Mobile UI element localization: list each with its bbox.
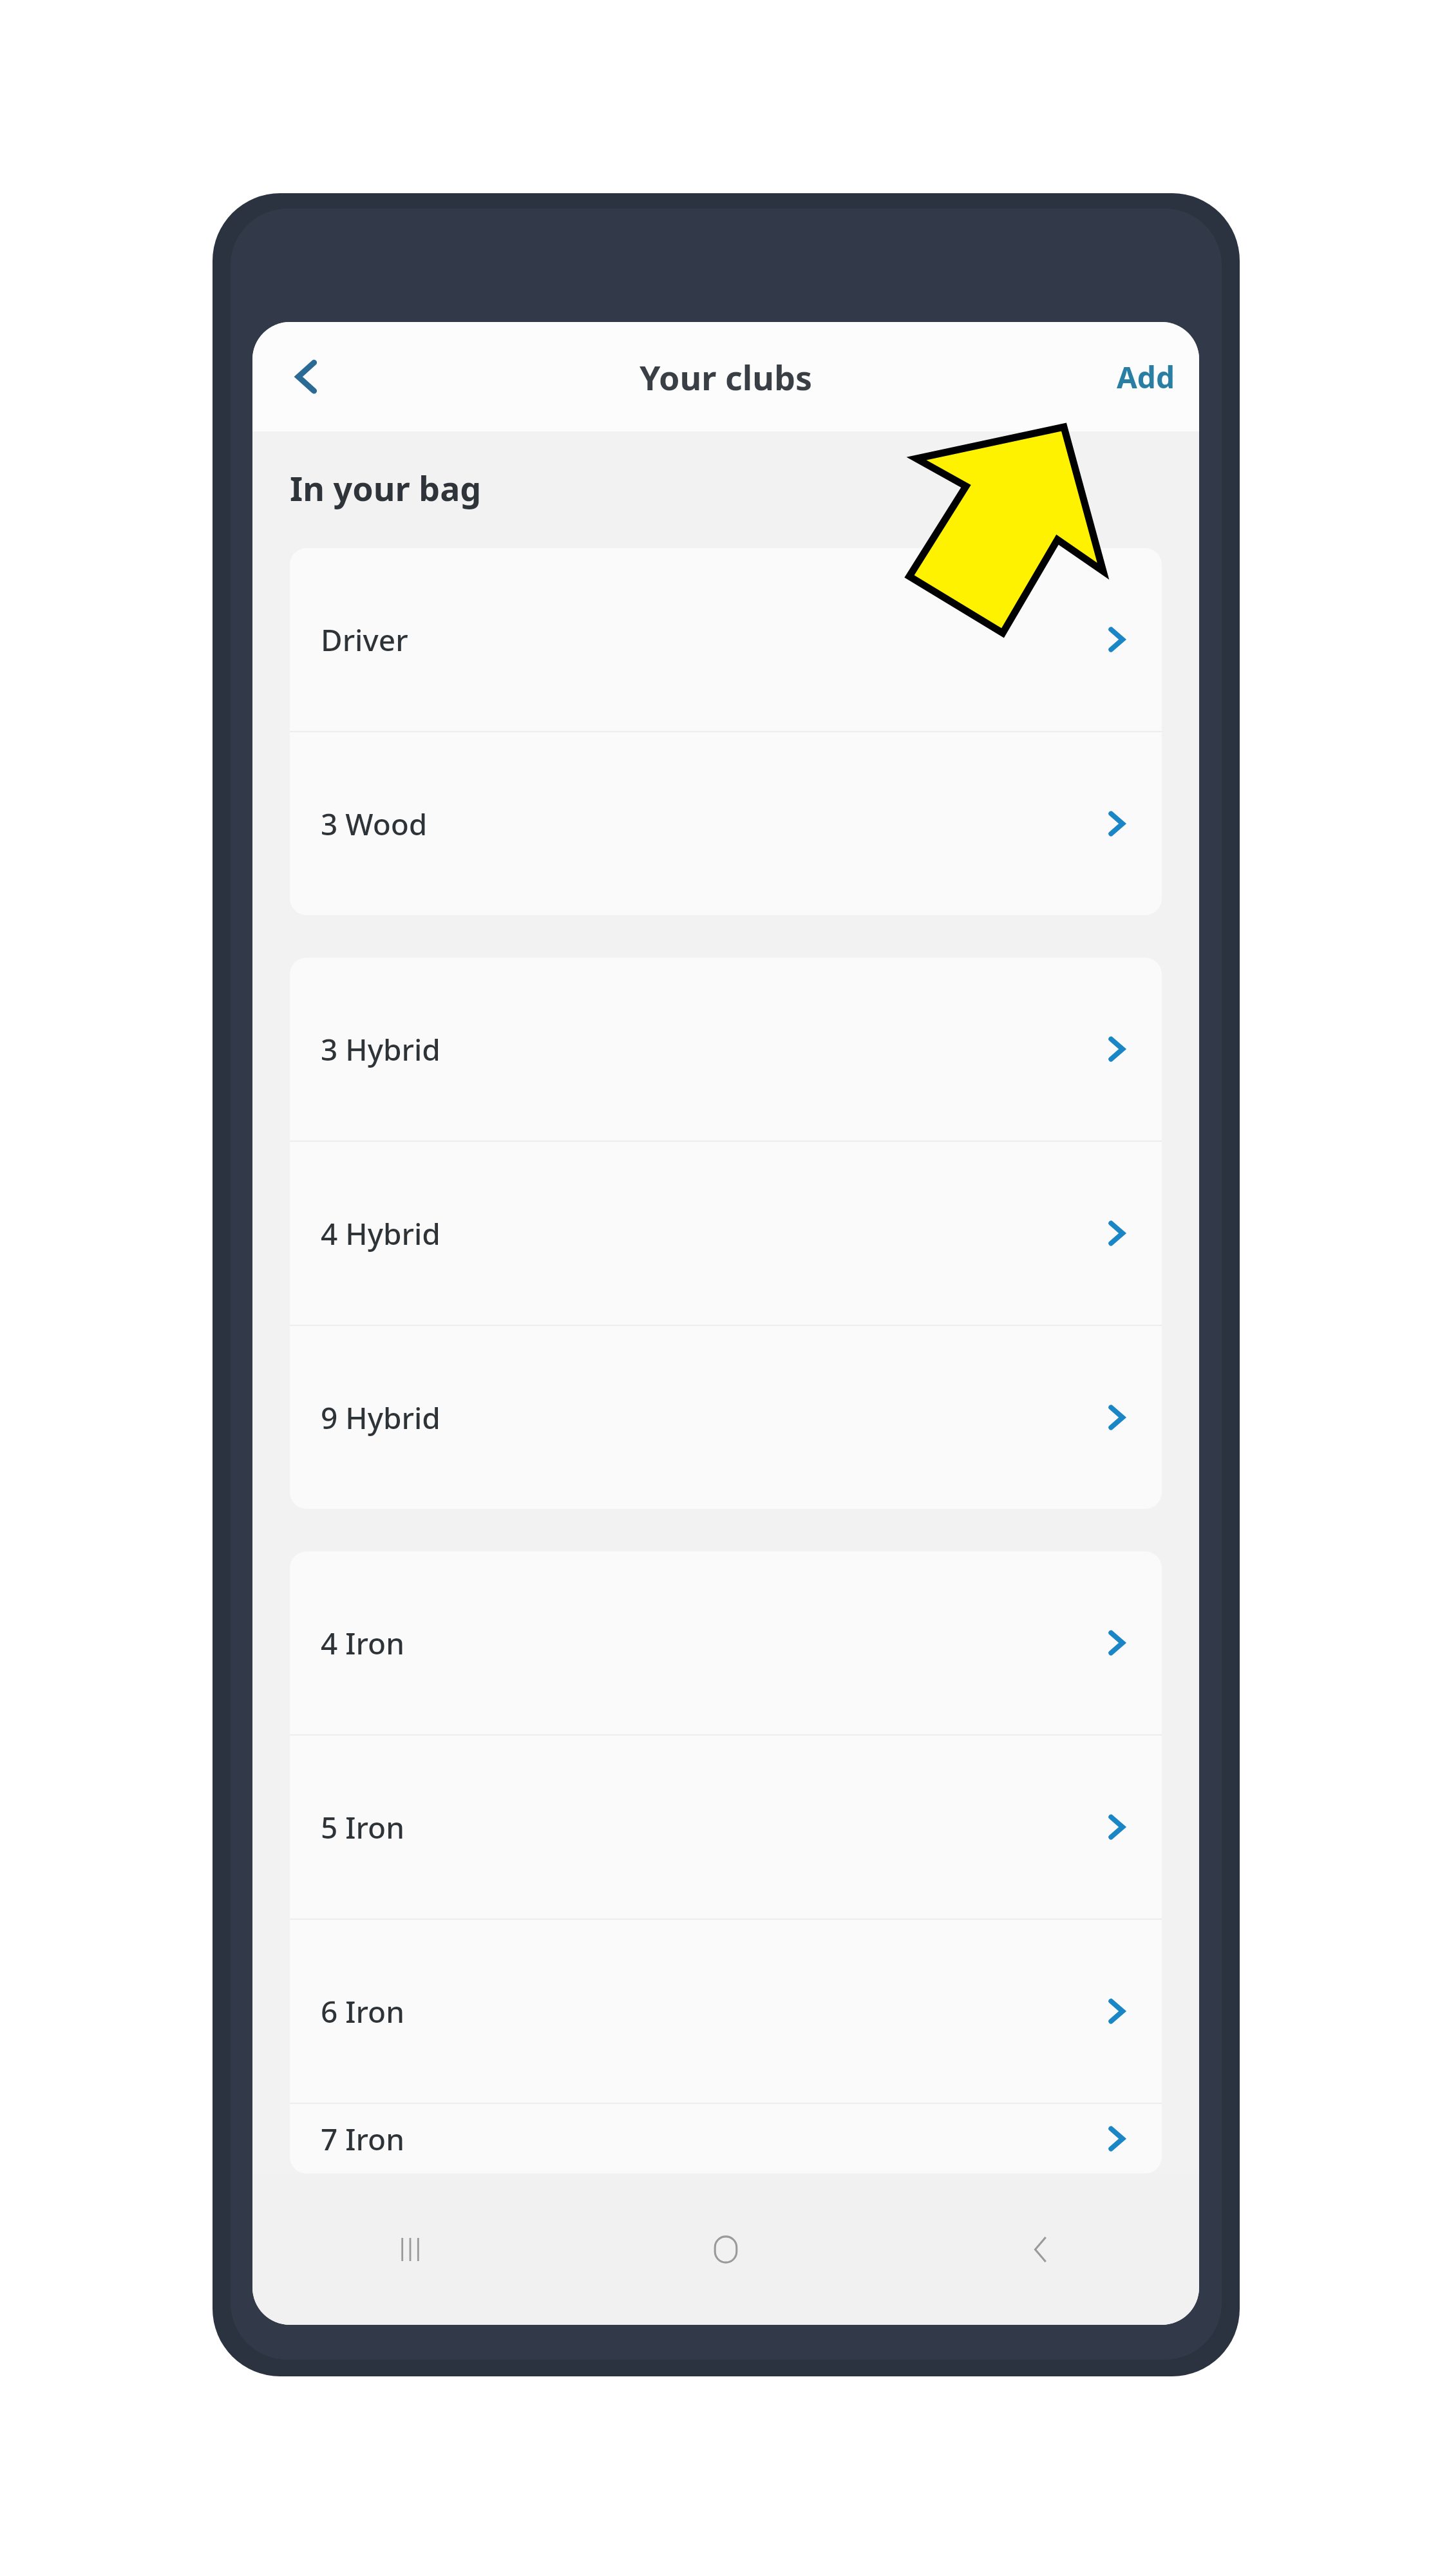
button[interactable]: Back bbox=[884, 2173, 1199, 2325]
button[interactable]: Recent apps bbox=[252, 2173, 568, 2325]
button[interactable]: 6 Iron bbox=[290, 1920, 1162, 2103]
button[interactable]: 9 Hybrid bbox=[290, 1326, 1162, 1509]
staticText: 4 Hybrid bbox=[321, 1213, 440, 1254]
button[interactable]: 4 Iron bbox=[290, 1551, 1162, 1734]
button[interactable]: 7 Iron bbox=[290, 2104, 1162, 2173]
staticText: 5 Iron bbox=[321, 1807, 405, 1848]
staticText: Driver bbox=[321, 620, 408, 660]
staticText: 4 Iron bbox=[321, 1623, 405, 1663]
button[interactable]: 4 Hybrid bbox=[290, 1142, 1162, 1325]
button[interactable]: 3 Hybrid bbox=[290, 958, 1162, 1141]
staticText: 7 Iron bbox=[321, 2119, 405, 2159]
staticText: 3 Wood bbox=[321, 804, 428, 844]
staticText: In your bag bbox=[290, 465, 482, 511]
button[interactable]: Driver bbox=[290, 548, 1162, 731]
staticText: Add bbox=[1117, 357, 1175, 397]
staticText: 9 Hybrid bbox=[321, 1397, 440, 1438]
button[interactable]: Add bbox=[1103, 345, 1189, 409]
button[interactable]: Home bbox=[568, 2173, 884, 2325]
staticText: 6 Iron bbox=[321, 1991, 405, 2032]
button[interactable]: 3 Wood bbox=[290, 732, 1162, 915]
staticText: 3 Hybrid bbox=[321, 1029, 440, 1070]
staticText: Your clubs bbox=[639, 354, 813, 400]
button[interactable]: 5 Iron bbox=[290, 1736, 1162, 1918]
button[interactable]: Back bbox=[268, 338, 345, 415]
